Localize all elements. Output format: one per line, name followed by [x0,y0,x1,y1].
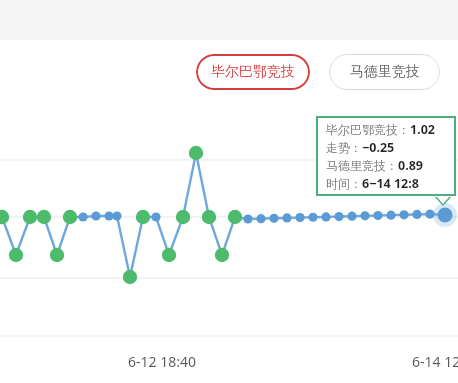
staticText: 毕尔巴鄂竞技 [211,63,295,81]
button[interactable]: 毕尔巴鄂竞技 [196,54,310,90]
staticText: 毕尔巴鄂竞技：1.02 [326,121,435,138]
staticText: 走势：−0.25 [326,139,395,156]
staticText: 时间：6−14 12:8 [326,175,419,192]
staticText: 6-14 12 [412,352,458,371]
staticText: 马德里竞技：0.89 [326,157,423,174]
staticText: 6-12 18:40 [128,352,196,371]
staticText: 马德里竞技 [350,63,420,81]
button[interactable]: 马德里竞技 [329,54,440,90]
